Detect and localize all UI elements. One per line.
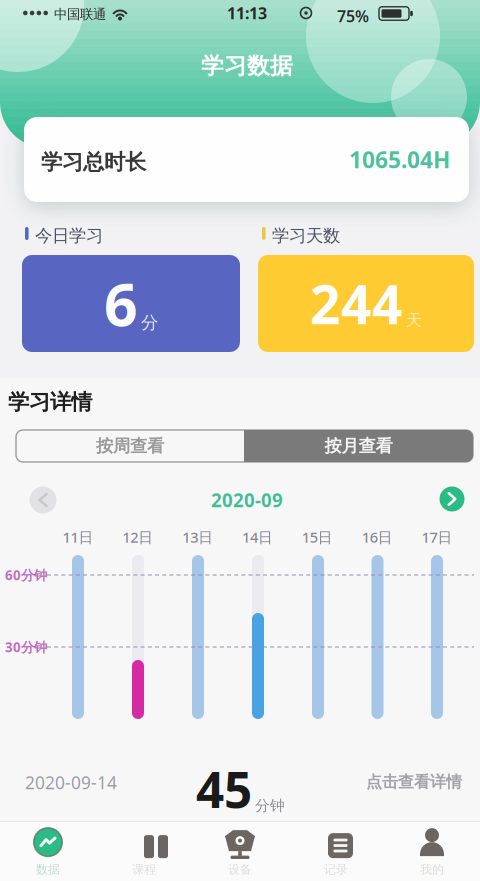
button[interactable]: 按周查看 bbox=[16, 430, 244, 462]
staticText: 中国联通 bbox=[54, 6, 106, 22]
staticText: 今日学习 bbox=[35, 225, 103, 246]
staticText: 学习详情 bbox=[8, 389, 92, 415]
staticText: 我的 bbox=[420, 862, 444, 877]
button[interactable]: Next month bbox=[439, 486, 464, 511]
button[interactable]: 学习总时长 bbox=[24, 117, 469, 202]
staticText: 17日 bbox=[421, 527, 452, 547]
staticText: 12日 bbox=[122, 527, 153, 547]
staticText: 2020-09 bbox=[211, 488, 283, 512]
staticText: 6 bbox=[104, 264, 138, 342]
staticText: 15日 bbox=[302, 527, 333, 547]
staticText: 1065.04H bbox=[349, 144, 450, 174]
button[interactable]: Device bbox=[210, 826, 270, 878]
staticText: 30分钟 bbox=[5, 638, 47, 656]
staticText: 45 bbox=[196, 756, 252, 821]
button[interactable]: 按月查看 bbox=[244, 430, 473, 462]
staticText: 分钟 bbox=[255, 796, 285, 814]
button[interactable]: Previous month bbox=[29, 486, 56, 513]
staticText: 13日 bbox=[182, 527, 213, 547]
staticText: 课程 bbox=[132, 862, 156, 877]
staticText: 2020-09-14 bbox=[25, 771, 117, 794]
button[interactable]: 点击查看详情 bbox=[366, 772, 462, 792]
staticText: 学习总时长 bbox=[41, 149, 146, 175]
staticText: 学习天数 bbox=[272, 225, 340, 246]
staticText: 点击查看详情 bbox=[366, 772, 462, 792]
button[interactable]: Profile bbox=[402, 826, 462, 878]
staticText: 14日 bbox=[242, 527, 273, 547]
staticText: 分 bbox=[141, 312, 158, 333]
staticText: 244 bbox=[310, 268, 403, 339]
staticText: 按周查看 bbox=[96, 435, 164, 457]
staticText: 60分钟 bbox=[5, 566, 47, 584]
staticText: 数据 bbox=[36, 862, 60, 877]
staticText: 16日 bbox=[362, 527, 393, 547]
staticText: 11日 bbox=[62, 527, 93, 547]
staticText: 设备 bbox=[228, 862, 252, 877]
button[interactable]: Courses bbox=[114, 826, 174, 878]
staticText: 学习数据 bbox=[201, 52, 293, 80]
staticText: 75% bbox=[337, 5, 369, 27]
button[interactable]: Data bbox=[18, 826, 78, 878]
button[interactable]: 244 bbox=[258, 255, 474, 352]
button[interactable]: Records bbox=[306, 826, 366, 878]
staticText: 11:13 bbox=[227, 2, 267, 24]
staticText: 天 bbox=[406, 310, 422, 330]
staticText: 按月查看 bbox=[324, 435, 392, 457]
staticText: 记录 bbox=[324, 862, 348, 877]
button[interactable]: 6 bbox=[22, 255, 240, 352]
